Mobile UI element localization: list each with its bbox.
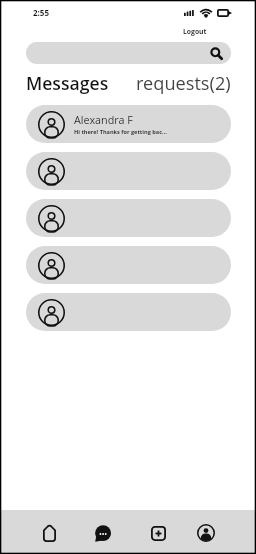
staticText: Logout: [183, 27, 207, 36]
button[interactable]: New post: [132, 512, 184, 554]
button[interactable]: [26, 293, 231, 331]
staticText: Alexandra F: [74, 112, 133, 127]
button[interactable]: Messages: [77, 512, 129, 554]
button[interactable]: Home: [23, 512, 75, 554]
button[interactable]: [26, 199, 231, 237]
button[interactable]: requests(2): [136, 71, 231, 96]
other: Search: [210, 47, 223, 60]
button[interactable]: [26, 246, 231, 284]
staticText: 2:55: [33, 7, 49, 18]
button[interactable]: Logout: [183, 27, 207, 36]
button[interactable]: Profile: [180, 512, 232, 554]
staticText: Hi there! Thanks for getting bac...: [74, 128, 167, 136]
staticText: Messages: [26, 71, 109, 95]
button[interactable]: Search: [26, 42, 231, 64]
button[interactable]: Alexandra F: [26, 105, 231, 143]
button[interactable]: [26, 152, 231, 190]
